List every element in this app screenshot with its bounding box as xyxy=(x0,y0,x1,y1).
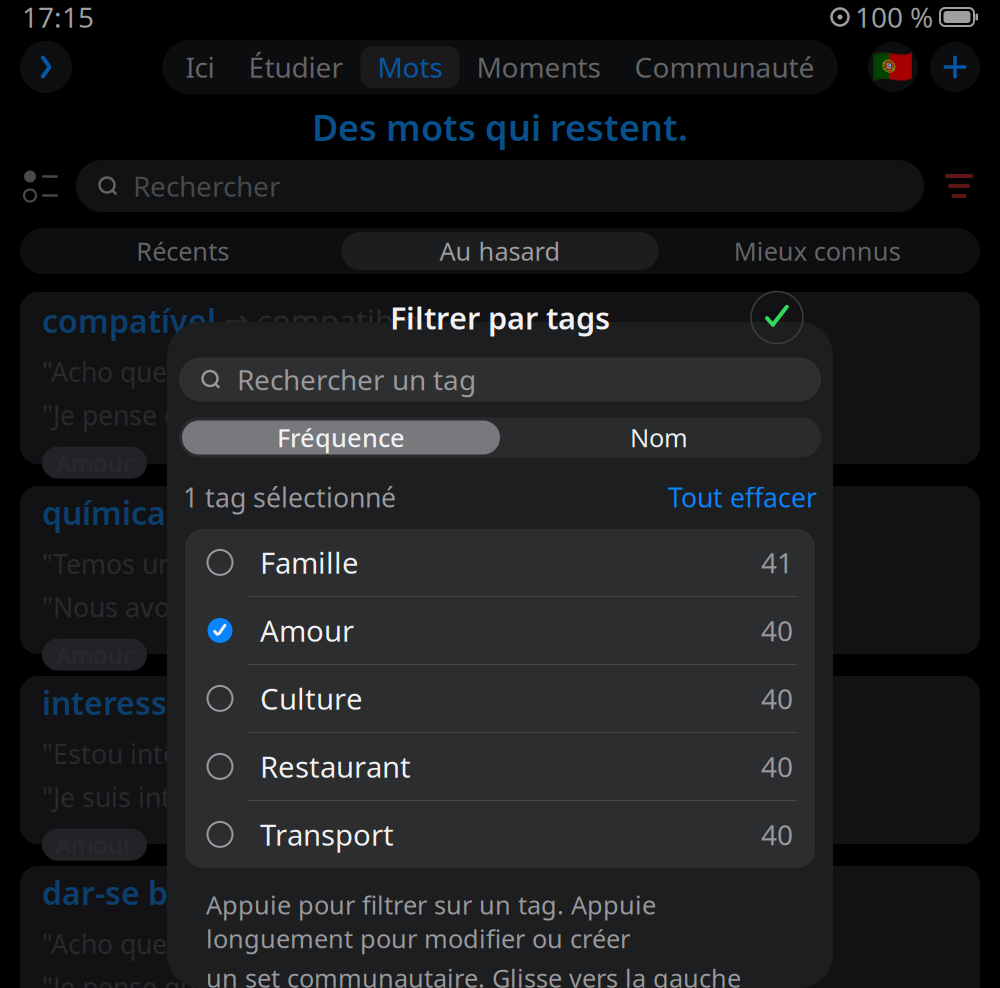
button[interactable]: Culture xyxy=(185,665,815,732)
staticText: compatível xyxy=(42,299,216,342)
button[interactable]: Ici xyxy=(168,46,231,88)
staticText: 41 xyxy=(761,544,793,581)
staticText: Amour xyxy=(56,829,133,861)
staticText: → xyxy=(226,876,251,909)
staticText: Restaurant xyxy=(260,747,411,786)
staticText: 100 % xyxy=(855,0,933,36)
staticText: compatible xyxy=(257,300,419,341)
staticText: "Acho que somos compatíveis." xyxy=(42,354,433,389)
staticText: Transport xyxy=(260,815,394,854)
staticText: Rechercher un tag xyxy=(237,361,476,398)
staticText: "Temos uma química incrível." xyxy=(42,546,419,581)
button[interactable]: Valider xyxy=(749,289,805,345)
staticText: → xyxy=(174,496,199,529)
button[interactable]: Ouvrir le menu xyxy=(20,41,72,93)
button[interactable]: Au hasard xyxy=(341,232,659,270)
staticText: Communauté xyxy=(634,48,814,86)
staticText: Fréquence xyxy=(277,421,405,454)
button[interactable]: Sélectionner xyxy=(20,163,62,209)
staticText: Culture xyxy=(260,679,363,718)
staticText: Amour xyxy=(56,639,133,671)
staticText: la chimie xyxy=(207,492,336,533)
staticText: → xyxy=(224,304,249,337)
staticText: Ici xyxy=(185,48,214,86)
staticText: bien s'entendre xyxy=(259,872,481,913)
staticText: "Nous avons une chimie incroyable." xyxy=(42,589,497,625)
staticText: "Je pense que nous nous entendons bien." xyxy=(42,969,566,988)
button[interactable]: Étudier xyxy=(231,46,360,88)
staticText: Étudier xyxy=(248,48,343,86)
button[interactable]: Moments xyxy=(459,46,617,88)
button[interactable]: Amour xyxy=(185,597,815,664)
staticText: dar-se bem xyxy=(42,871,218,914)
staticText: "Acho que nos damos bem." xyxy=(42,926,392,961)
button[interactable]: Rechercher xyxy=(76,160,924,212)
staticText: Amour xyxy=(260,611,354,650)
staticText: Tout effacer xyxy=(668,479,817,515)
staticText: 17:15 xyxy=(22,0,94,36)
staticText: Des mots qui restent. xyxy=(312,103,688,151)
staticText: Appuie pour filtrer sur un tag. Appuie l… xyxy=(206,888,656,955)
staticText: Moments xyxy=(476,48,600,86)
button[interactable]: Tout effacer xyxy=(668,479,817,515)
staticText: Famille xyxy=(260,543,359,582)
button[interactable]: Mieux connus xyxy=(659,232,976,270)
button[interactable]: Filtrer xyxy=(938,163,980,209)
staticText: intéressé xyxy=(267,682,398,723)
staticText: 40 xyxy=(761,816,793,853)
staticText: Rechercher xyxy=(133,167,281,205)
button[interactable]: Récents xyxy=(24,232,341,270)
staticText: química xyxy=(42,491,166,534)
staticText: "Estou interessado em ti." xyxy=(42,736,365,771)
staticText: 40 xyxy=(761,748,793,785)
staticText: Au hasard xyxy=(439,234,560,268)
staticText: "Je pense que nous sommes compatibles." xyxy=(42,397,571,433)
button[interactable]: Rechercher un tag xyxy=(179,357,821,401)
staticText: interessado xyxy=(42,681,226,724)
staticText: 🇵🇹 xyxy=(872,48,914,86)
button[interactable]: Langue : portugais xyxy=(868,42,918,92)
staticText: Récents xyxy=(136,234,229,268)
button[interactable]: Ajouter xyxy=(930,42,980,92)
staticText: 1 tag sélectionné xyxy=(183,479,396,515)
staticText: Mieux connus xyxy=(734,234,901,268)
staticText: Amour xyxy=(56,447,133,479)
button[interactable]: Fréquence xyxy=(182,420,500,454)
staticText: 40 xyxy=(761,680,793,717)
staticText: "Je suis intéressé par toi ?" xyxy=(42,779,371,815)
button[interactable]: Restaurant xyxy=(185,733,815,800)
button[interactable]: Nom xyxy=(500,420,818,454)
staticText: 40 xyxy=(761,612,793,649)
button[interactable]: Transport xyxy=(185,801,815,868)
button[interactable]: Communauté xyxy=(617,46,831,88)
staticText: Mots xyxy=(377,48,442,86)
button[interactable]: Mots xyxy=(360,46,459,88)
button[interactable]: Famille xyxy=(185,529,815,596)
staticText: Filtrer par tags xyxy=(390,297,610,338)
staticText: un set communautaire. Glisse vers la gau… xyxy=(206,961,741,988)
staticText: Nom xyxy=(630,421,688,454)
